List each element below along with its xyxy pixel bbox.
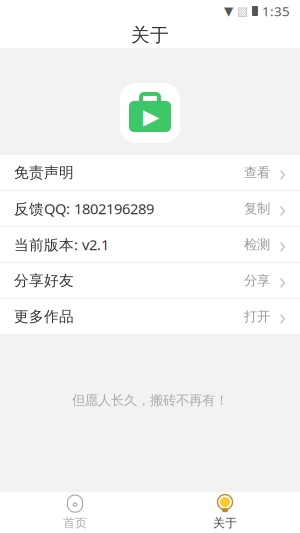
staticText: › [279, 229, 286, 259]
staticText: 当前版本: v2.1 [14, 235, 109, 254]
staticText: ▼ [224, 4, 233, 18]
staticText: › [279, 301, 286, 331]
button[interactable]: 首页 [0, 492, 150, 533]
staticText: 首页 [63, 516, 87, 530]
button[interactable]: 反馈QQ: 1802196289 [0, 191, 300, 226]
staticText: 查看 [244, 164, 270, 181]
button[interactable]: 关于 [150, 492, 300, 533]
staticText: 分享好友 [14, 271, 74, 289]
staticText: › [279, 265, 286, 295]
button[interactable]: 当前版本: v2.1 [0, 227, 300, 262]
staticText: 复制 [244, 200, 270, 217]
staticText: 1:35 [262, 2, 290, 20]
button[interactable]: 分享好友 [0, 263, 300, 298]
staticText: 关于 [131, 23, 169, 46]
button[interactable]: 免责声明 [0, 155, 300, 190]
staticText: 免责声明 [14, 163, 74, 181]
staticText: ▶ [143, 104, 159, 129]
staticText: 但愿人长久，搬砖不再有！ [72, 392, 228, 408]
staticText: › [279, 157, 286, 187]
button[interactable]: 更多作品 [0, 299, 300, 334]
staticText: 关于 [213, 516, 237, 530]
staticText: 分享 [244, 272, 270, 289]
staticText: 打开 [244, 308, 270, 325]
staticText: 检测 [244, 236, 270, 253]
staticText: 更多作品 [14, 307, 74, 325]
staticText: ▧ [237, 4, 248, 18]
staticText: 反馈QQ: 1802196289 [14, 199, 154, 218]
staticText: › [279, 193, 286, 223]
